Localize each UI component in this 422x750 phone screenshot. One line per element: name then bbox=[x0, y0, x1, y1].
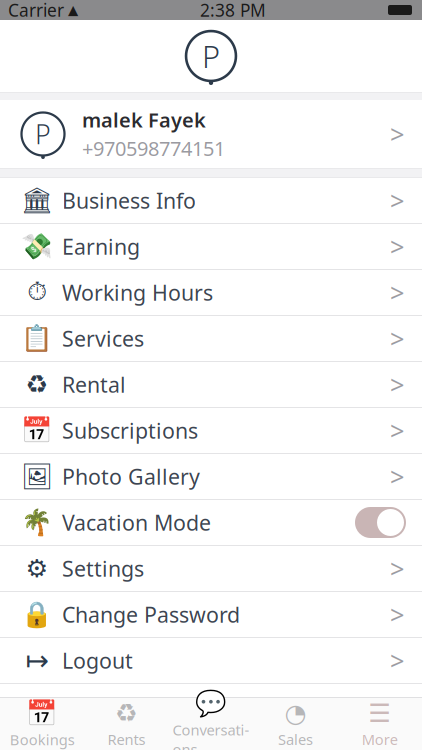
button[interactable]: 🔒 bbox=[0, 592, 422, 637]
staticText: ↦ bbox=[25, 645, 48, 676]
staticText: 🔒 bbox=[21, 600, 53, 629]
staticText: ♻ bbox=[25, 370, 48, 399]
staticText: Earning bbox=[62, 232, 140, 261]
staticText: 📅 bbox=[21, 416, 53, 445]
button[interactable]: 📅 bbox=[0, 408, 422, 453]
staticText: ⏱ bbox=[27, 280, 47, 305]
staticText: P bbox=[202, 36, 220, 76]
button[interactable]: 📋 bbox=[0, 316, 422, 361]
staticText: 🌴 bbox=[21, 508, 53, 537]
button[interactable]: ☰ bbox=[338, 698, 422, 750]
button[interactable]: 💬 bbox=[169, 698, 253, 750]
staticText: ◔ bbox=[284, 699, 306, 728]
staticText: > bbox=[390, 552, 404, 585]
staticText: Services bbox=[62, 324, 144, 353]
staticText: > bbox=[390, 644, 404, 677]
staticText: Carrier bbox=[8, 0, 64, 21]
staticText: Logout bbox=[62, 646, 133, 675]
staticText: ⚙ bbox=[25, 554, 48, 583]
staticText: Conversations bbox=[172, 720, 249, 750]
staticText: malek Fayek bbox=[82, 106, 206, 133]
button[interactable]: 💸 bbox=[0, 224, 422, 269]
staticText: Rental bbox=[62, 370, 126, 399]
staticText: > bbox=[390, 460, 404, 493]
button[interactable]: ♻ bbox=[0, 362, 422, 407]
staticText: > bbox=[390, 598, 404, 631]
staticText: > bbox=[390, 184, 404, 217]
staticText: ♻ bbox=[115, 699, 138, 728]
staticText: 💸 bbox=[21, 232, 53, 261]
staticText: Change Password bbox=[62, 600, 240, 629]
staticText: Vacation Mode bbox=[62, 508, 211, 537]
button[interactable]: P bbox=[0, 100, 422, 168]
staticText: P bbox=[35, 116, 51, 152]
staticText: > bbox=[390, 322, 404, 355]
staticText: > bbox=[390, 368, 404, 401]
button[interactable]: 🌴 bbox=[0, 500, 422, 545]
button[interactable]: ◔ bbox=[253, 698, 338, 750]
staticText: Business Info bbox=[62, 186, 196, 215]
button[interactable]: ♻ bbox=[84, 698, 169, 750]
staticText: Sales bbox=[278, 730, 313, 749]
button[interactable]: ↦ bbox=[0, 638, 422, 683]
staticText: 🏛 bbox=[21, 186, 53, 215]
staticText: Settings bbox=[62, 554, 144, 583]
staticText: 📋 bbox=[21, 324, 53, 353]
staticText: 🖼 bbox=[21, 462, 53, 491]
staticText: Bookings bbox=[10, 730, 75, 749]
staticText: > bbox=[390, 117, 404, 151]
staticText: Subscriptions bbox=[62, 416, 198, 445]
staticText: 💬 bbox=[195, 689, 227, 718]
staticText: > bbox=[390, 276, 404, 309]
staticText: ▲ bbox=[68, 2, 78, 17]
staticText: More bbox=[362, 730, 398, 749]
button[interactable]: 🖼 bbox=[0, 454, 422, 499]
staticText: > bbox=[390, 230, 404, 263]
button[interactable]: 📅 bbox=[0, 698, 84, 750]
staticText: Working Hours bbox=[62, 278, 213, 307]
staticText: 📅 bbox=[26, 699, 58, 728]
staticText: Rents bbox=[108, 730, 146, 749]
button[interactable]: ⏱ bbox=[0, 270, 422, 315]
staticText: Photo Gallery bbox=[62, 462, 200, 491]
staticText: +970598774151 bbox=[82, 135, 225, 162]
staticText: > bbox=[390, 414, 404, 447]
button[interactable]: 🏛 bbox=[0, 178, 422, 223]
button[interactable]: ⚙ bbox=[0, 546, 422, 591]
staticText: 2:38 PM bbox=[200, 0, 266, 21]
staticText: ☰ bbox=[368, 699, 391, 728]
